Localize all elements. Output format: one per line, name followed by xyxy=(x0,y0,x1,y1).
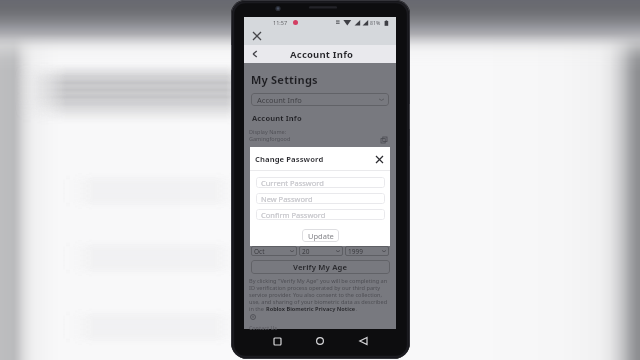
staticText: Oct xyxy=(254,247,265,256)
button[interactable]: Recents xyxy=(267,331,287,351)
button[interactable] xyxy=(251,246,297,256)
staticText: Contact Us xyxy=(249,324,278,331)
button[interactable]: Update xyxy=(302,229,339,242)
staticText: Change Password xyxy=(255,154,324,164)
staticText: Gamingforgood xyxy=(249,135,291,142)
button[interactable]: Verify My Age xyxy=(251,260,390,274)
button[interactable]: Back xyxy=(249,48,261,60)
button[interactable]: Confirm Password xyxy=(256,209,385,220)
button[interactable]: Current Password xyxy=(256,177,385,188)
staticText: Display Name: xyxy=(249,128,287,135)
staticText: Roblox Biometric Privacy Notice xyxy=(266,305,356,313)
staticText: Account Info xyxy=(257,95,302,105)
staticText: By clicking "Verify My Age" you will be … xyxy=(249,277,388,284)
staticText: 81% xyxy=(370,19,381,26)
staticText: New Password xyxy=(261,194,313,204)
staticText: Account Info xyxy=(290,48,354,61)
staticText: ID verification process operated by our … xyxy=(249,284,381,291)
button[interactable]: Close xyxy=(251,30,262,41)
staticText: Confirm Password xyxy=(261,210,326,220)
staticText: 1999 xyxy=(348,247,363,256)
button[interactable]: Account Info xyxy=(251,93,389,106)
button[interactable] xyxy=(299,246,343,256)
staticText: My Settings xyxy=(251,72,318,87)
staticText: Current Password xyxy=(261,178,324,188)
staticText: . xyxy=(356,305,358,313)
button[interactable]: Home xyxy=(310,331,330,351)
button[interactable]: Close dialog xyxy=(373,153,385,165)
staticText: service provider. You also consent to th… xyxy=(249,291,382,298)
staticText: 20 xyxy=(302,247,310,256)
button[interactable] xyxy=(345,246,389,256)
staticText: use, and sharing of your biometric data … xyxy=(249,298,388,305)
staticText: in the xyxy=(249,305,266,313)
staticText: Verify My Age xyxy=(293,262,348,272)
staticText: Account Info xyxy=(252,113,302,123)
button[interactable]: Back xyxy=(353,331,373,351)
button[interactable]: New Password xyxy=(256,193,385,204)
staticText: 11:57 xyxy=(273,19,288,26)
staticText: Update xyxy=(308,231,334,241)
